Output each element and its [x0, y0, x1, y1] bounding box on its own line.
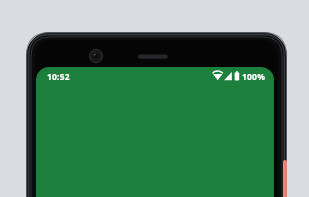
button[interactable]: Power button	[283, 160, 287, 197]
staticText: 10:52	[47, 71, 70, 83]
staticText: 100%	[242, 71, 266, 83]
